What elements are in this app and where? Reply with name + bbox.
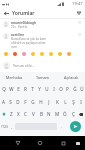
- staticText: Ş: [72, 99, 75, 105]
- button[interactable]: J: [45, 95, 53, 108]
- button[interactable]: W: [8, 82, 15, 95]
- staticText: mounir66dough: [11, 21, 37, 25]
- button[interactable]: O: [57, 82, 64, 95]
- staticText: T: [31, 86, 34, 92]
- staticText: Bunudluva ve yok ka kasned: [11, 37, 46, 41]
- staticText: 1dk Yanıtla: [11, 49, 28, 53]
- staticText: Y: [38, 86, 41, 92]
- button[interactable]: I: [50, 82, 57, 95]
- button[interactable]: Emoji reaction: [19, 49, 28, 58]
- button[interactable]: Emoji reaction: [37, 49, 46, 58]
- staticText: J: [48, 99, 50, 105]
- button[interactable]: Like: [77, 33, 82, 38]
- staticText: S: [9, 99, 12, 105]
- staticText: acetillen: [11, 33, 25, 37]
- staticText: K: [56, 99, 59, 105]
- staticText: H: [39, 99, 43, 105]
- button[interactable]: Share: [75, 9, 83, 17]
- button[interactable]: Emoji reaction: [64, 49, 73, 58]
- button[interactable]: Tamam: [29, 72, 57, 82]
- staticText: E: [17, 86, 20, 92]
- button[interactable]: ,: [9, 120, 15, 133]
- staticText: U: [45, 86, 49, 92]
- button[interactable]: Y: [36, 82, 43, 95]
- staticText: .: [61, 124, 63, 130]
- button[interactable]: C: [22, 108, 29, 120]
- button[interactable]: D: [14, 95, 21, 108]
- staticText: Ü: [80, 86, 84, 92]
- button[interactable]: Emoji reaction: [28, 49, 37, 58]
- button[interactable]: Merhaba: [0, 72, 29, 82]
- button[interactable]: K: [53, 95, 61, 108]
- button[interactable]: Ö: [61, 108, 69, 120]
- staticText: A: [2, 99, 5, 105]
- button[interactable]: Like: [77, 21, 82, 26]
- staticText: ofdrdrk ve paylaşım aktor: [11, 41, 46, 45]
- staticText: B: [40, 111, 43, 117]
- button[interactable]: Emoji reaction: [55, 49, 64, 58]
- button[interactable]: Q: [0, 82, 8, 95]
- button[interactable]: Shift: [0, 108, 8, 120]
- button[interactable]: X: [15, 108, 22, 120]
- button[interactable]: Ş: [69, 95, 77, 108]
- button[interactable]: mounir66dough: [0, 21, 85, 29]
- button[interactable]: Back: [2, 9, 10, 17]
- button[interactable]: P: [64, 82, 71, 95]
- staticText: V: [32, 111, 35, 117]
- button[interactable]: Ğ: [71, 82, 78, 95]
- button[interactable]: Ü: [78, 82, 85, 95]
- staticText: ,: [11, 124, 13, 130]
- button[interactable]: N: [45, 108, 53, 120]
- button[interactable]: L: [61, 95, 69, 108]
- button[interactable]: E: [15, 82, 22, 95]
- staticText: com: [11, 45, 17, 49]
- button[interactable]: Send: [66, 120, 85, 133]
- button[interactable]: Back: [12, 137, 24, 149]
- button[interactable]: Recents: [57, 137, 69, 149]
- staticText: O: [59, 86, 63, 92]
- button[interactable]: acetillen: [0, 33, 85, 53]
- button[interactable]: R: [22, 82, 29, 95]
- button[interactable]: Emoji reaction: [10, 49, 19, 58]
- button[interactable]: F: [21, 95, 29, 108]
- button[interactable]: Z: [8, 108, 15, 120]
- staticText: Ç: [72, 111, 75, 117]
- staticText: Tamam: [36, 75, 50, 80]
- button[interactable]: T: [29, 82, 36, 95]
- button[interactable]: Ç: [69, 108, 77, 120]
- staticText: Yorumlar: [12, 10, 35, 17]
- staticText: Merhaba: [6, 75, 23, 80]
- staticText: F: [24, 99, 27, 105]
- button[interactable]: B: [37, 108, 45, 120]
- staticText: ?123: [1, 125, 8, 129]
- button[interactable]: H: [37, 95, 45, 108]
- staticText: Açılacak: [64, 75, 79, 80]
- staticText: Q: [2, 86, 6, 92]
- staticText: 19:47: [72, 1, 83, 7]
- staticText: X: [17, 111, 20, 117]
- button[interactable]: M: [53, 108, 61, 120]
- button[interactable]: Emoji reaction: [1, 49, 10, 58]
- staticText: W: [9, 86, 14, 92]
- button[interactable]: S: [7, 95, 14, 108]
- staticText: Ğ: [73, 86, 77, 92]
- staticText: Z: [10, 111, 13, 117]
- button[interactable]: Home: [34, 137, 46, 149]
- staticText: R: [24, 86, 27, 92]
- button[interactable]: I: [77, 95, 85, 108]
- button[interactable]: G: [29, 95, 37, 108]
- staticText: G: [31, 99, 35, 105]
- staticText: L: [64, 99, 67, 105]
- button[interactable]: A: [0, 95, 7, 108]
- button[interactable]: V: [29, 108, 37, 120]
- staticText: 21s Yanıtla: [11, 25, 28, 29]
- button[interactable]: ?123: [0, 120, 9, 133]
- button[interactable]: Açılacak: [57, 72, 85, 82]
- button[interactable]: U: [43, 82, 50, 95]
- button[interactable]: Emoji reaction: [46, 49, 55, 58]
- button[interactable]: Backspace: [77, 108, 85, 120]
- staticText: Ö: [63, 111, 67, 117]
- button[interactable]: Switch keyboard: [73, 139, 82, 148]
